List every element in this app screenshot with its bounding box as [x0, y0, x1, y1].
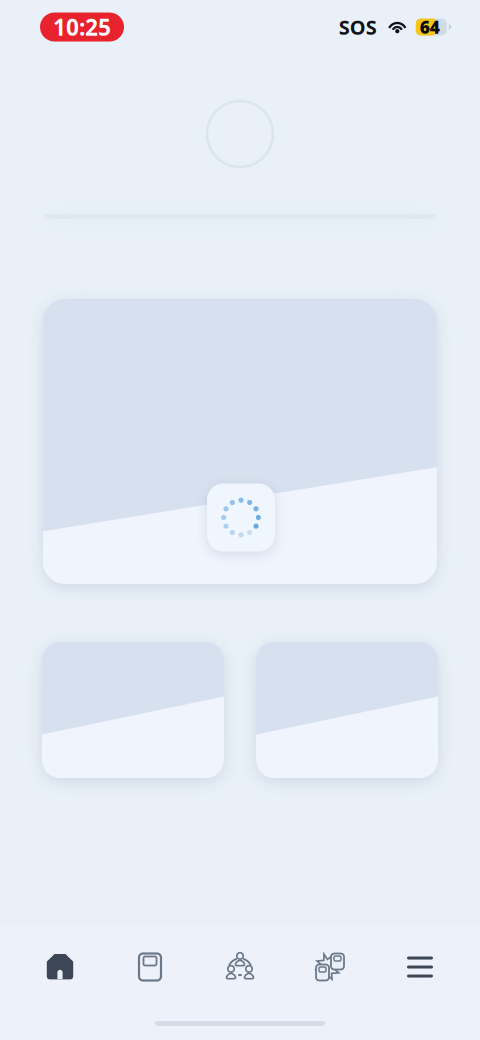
staticText: 64 [420, 15, 440, 38]
button[interactable]: Library [105, 946, 195, 988]
staticText: 10:25 [53, 12, 111, 42]
button[interactable]: Menu [375, 946, 465, 988]
button[interactable]: Community [195, 946, 285, 988]
button[interactable]: Home [15, 946, 105, 988]
button[interactable]: Messages [285, 946, 375, 988]
staticText: SOS [339, 14, 377, 40]
